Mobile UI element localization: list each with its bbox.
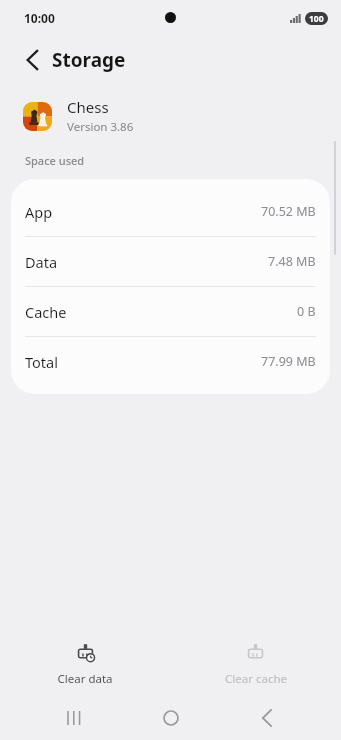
- staticText: Clear cache: [225, 671, 287, 687]
- staticText: 10:00: [24, 10, 55, 26]
- button[interactable]: Recent apps: [52, 696, 96, 740]
- staticText: 70.52 MB: [261, 203, 316, 220]
- staticText: 0 B: [297, 303, 316, 320]
- button[interactable]: Back: [245, 696, 289, 740]
- staticText: Total: [25, 352, 58, 372]
- staticText: Space used: [25, 153, 85, 168]
- staticText: 7.48 MB: [268, 253, 316, 270]
- staticText: Version 3.86: [67, 119, 134, 135]
- staticText: Cache: [25, 302, 67, 322]
- button[interactable]: Clear cache: [170, 637, 341, 693]
- button[interactable]: Home: [149, 696, 193, 740]
- staticText: Clear data: [57, 671, 113, 687]
- staticText: 100: [309, 13, 324, 25]
- button[interactable]: Data: [11, 237, 330, 286]
- button[interactable]: Total: [11, 337, 330, 386]
- staticText: Storage: [52, 47, 126, 73]
- button[interactable]: Clear data: [0, 637, 170, 693]
- staticText: App: [25, 202, 53, 222]
- staticText: Data: [25, 252, 58, 272]
- button[interactable]: App: [11, 187, 330, 236]
- staticText: 77.99 MB: [261, 353, 316, 370]
- staticText: Chess: [67, 97, 109, 117]
- button[interactable]: Back: [14, 42, 50, 78]
- button[interactable]: Cache: [11, 287, 330, 336]
